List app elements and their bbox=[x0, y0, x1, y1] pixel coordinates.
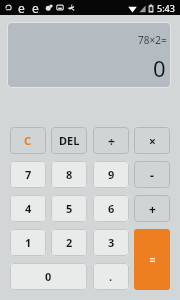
button[interactable]: . bbox=[93, 263, 129, 290]
button[interactable]: ÷ bbox=[93, 127, 129, 154]
button[interactable]: × bbox=[134, 127, 170, 154]
button[interactable]: 8 bbox=[51, 161, 87, 188]
staticText: . bbox=[109, 269, 113, 284]
staticText: 3 bbox=[108, 235, 115, 250]
staticText: 5 bbox=[66, 201, 73, 216]
staticText: e bbox=[18, 0, 25, 15]
button[interactable]: 1 bbox=[10, 229, 46, 256]
staticText: C bbox=[24, 133, 32, 148]
button[interactable]: 4 bbox=[10, 195, 46, 222]
staticText: 1 bbox=[25, 235, 32, 250]
staticText: ÷ bbox=[108, 133, 115, 149]
staticText: + bbox=[149, 201, 156, 217]
button[interactable]: 3 bbox=[93, 229, 129, 256]
button[interactable]: + bbox=[134, 195, 170, 222]
button[interactable]: - bbox=[134, 161, 170, 188]
button[interactable]: 0 bbox=[10, 263, 87, 290]
staticText: - bbox=[150, 167, 154, 183]
staticText: 5:43 bbox=[157, 2, 175, 14]
button[interactable]: Equals bbox=[134, 229, 170, 290]
button[interactable]: C bbox=[10, 127, 46, 154]
button[interactable]: 5 bbox=[51, 195, 87, 222]
button[interactable]: DEL bbox=[51, 127, 87, 154]
button[interactable]: 2 bbox=[51, 229, 87, 256]
staticText: 0 bbox=[45, 269, 52, 284]
button[interactable]: 9 bbox=[93, 161, 129, 188]
staticText: 78×2= bbox=[138, 33, 167, 47]
staticText: 6 bbox=[108, 201, 115, 216]
staticText: 9 bbox=[108, 167, 115, 182]
staticText: 7 bbox=[25, 167, 32, 182]
staticText: DEL bbox=[59, 133, 80, 148]
staticText: e bbox=[32, 0, 39, 15]
staticText: 4 bbox=[25, 201, 32, 216]
staticText: 0 bbox=[153, 53, 166, 83]
button[interactable]: 6 bbox=[93, 195, 129, 222]
staticText: × bbox=[149, 133, 156, 149]
staticText: 2 bbox=[66, 235, 73, 250]
button[interactable]: 7 bbox=[10, 161, 46, 188]
staticText: 8 bbox=[66, 167, 73, 182]
